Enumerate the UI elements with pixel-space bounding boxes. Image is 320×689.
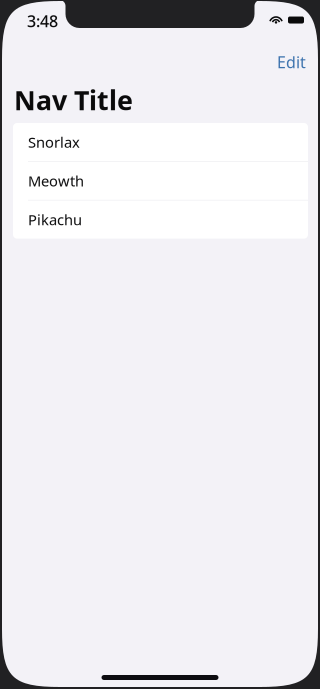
button[interactable]: Snorlax bbox=[13, 123, 308, 161]
staticText: Meowth bbox=[28, 171, 84, 191]
staticText: Edit bbox=[277, 51, 306, 73]
staticText: Snorlax bbox=[28, 132, 80, 152]
button[interactable]: Meowth bbox=[13, 162, 308, 200]
staticText: 3:48 bbox=[27, 10, 58, 32]
button[interactable]: Edit bbox=[269, 45, 314, 79]
staticText: Pikachu bbox=[28, 210, 82, 229]
staticText: Nav Title bbox=[14, 82, 133, 118]
button[interactable]: Pikachu bbox=[13, 201, 308, 239]
